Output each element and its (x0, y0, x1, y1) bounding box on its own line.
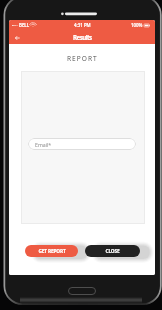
button[interactable]: Home (68, 287, 96, 295)
staticText: Results (73, 33, 92, 41)
button[interactable]: Back (11, 31, 24, 44)
staticText: 4:31 PM (74, 22, 91, 28)
button[interactable]: CLOSE (85, 245, 140, 257)
staticText: GET REPORT (38, 248, 66, 255)
button[interactable]: Email* (28, 138, 136, 150)
staticText: CLOSE (105, 248, 120, 255)
staticText: REPORT (67, 54, 98, 63)
staticText: 100% (131, 22, 143, 28)
staticText: BELL (19, 22, 30, 28)
staticText: Email* (35, 141, 52, 148)
button[interactable]: GET REPORT (25, 245, 78, 257)
